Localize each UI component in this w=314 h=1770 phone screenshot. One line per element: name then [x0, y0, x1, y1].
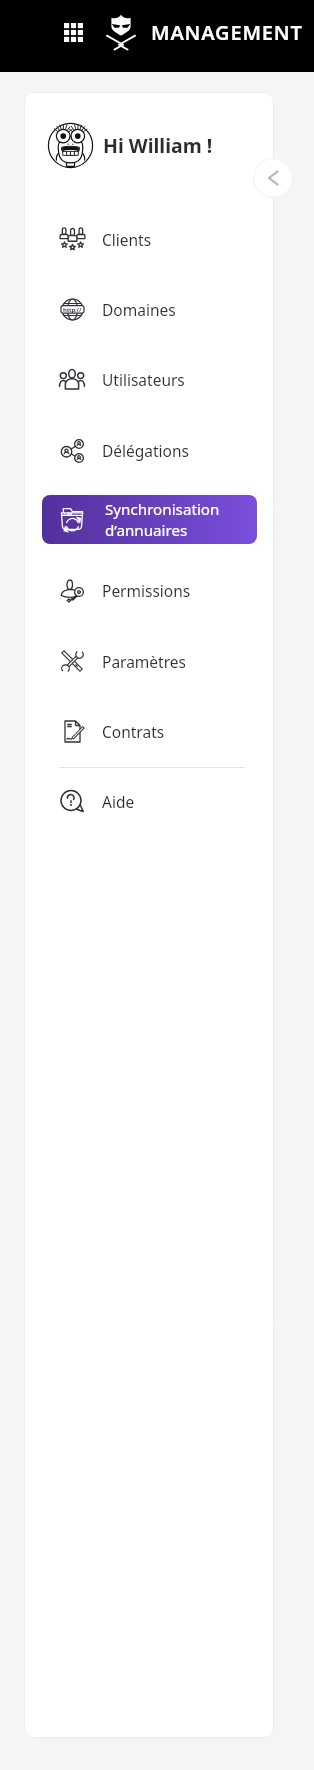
staticText: Aide — [102, 791, 135, 812]
button[interactable]: http:// — [24, 274, 274, 344]
button[interactable]: Délégations — [24, 415, 274, 485]
staticText: Permissions — [102, 580, 191, 601]
staticText: http:// — [63, 306, 82, 314]
button[interactable]: Hi William ! — [24, 122, 274, 169]
button[interactable]: Paramètres — [24, 626, 274, 696]
staticText: Domaines — [102, 299, 176, 320]
staticText: Synchronisation — [105, 499, 220, 520]
staticText: Paramètres — [102, 651, 186, 672]
button[interactable]: Apps menu — [55, 14, 91, 50]
staticText: Utilisateurs — [102, 369, 185, 390]
button[interactable]: Management logo — [103, 14, 139, 50]
button[interactable]: Permissions — [24, 555, 274, 625]
staticText: d’annuaires — [105, 520, 188, 541]
staticText: Délégations — [102, 440, 190, 461]
button[interactable]: Synchronisation — [42, 495, 257, 544]
staticText: Contrats — [102, 721, 165, 742]
staticText: Hi William ! — [103, 132, 213, 159]
button[interactable]: Collapse menu — [253, 158, 293, 198]
button[interactable]: Utilisateurs — [24, 344, 274, 414]
button[interactable]: Contrats — [24, 696, 274, 766]
button[interactable]: Clients — [24, 204, 274, 274]
staticText: MANAGEMENT — [151, 19, 303, 46]
button[interactable]: Aide — [24, 766, 274, 836]
staticText: Clients — [102, 229, 152, 250]
